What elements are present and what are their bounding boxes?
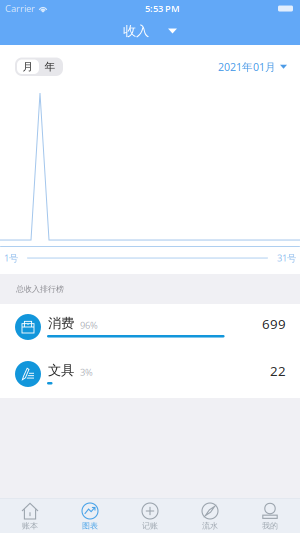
staticText: 记账: [142, 521, 158, 531]
button[interactable]: 我的: [240, 498, 300, 533]
staticText: 总收入排行榜: [16, 284, 64, 294]
staticText: 月: [22, 60, 33, 73]
button[interactable]: 流水: [180, 498, 240, 533]
staticText: 流水: [202, 521, 218, 531]
staticText: 年: [44, 60, 55, 73]
button[interactable]: 年: [39, 59, 61, 74]
staticText: 5:53 PM: [145, 2, 180, 15]
staticText: Carrier: [5, 2, 35, 15]
button[interactable]: 2021年01月: [218, 60, 287, 74]
button[interactable]: 记账: [120, 498, 180, 533]
staticText: 账本: [22, 521, 38, 531]
button[interactable]: 图表: [60, 498, 120, 533]
button[interactable]: 收入: [0, 17, 300, 45]
staticText: 1号: [4, 252, 18, 264]
staticText: 图表: [82, 521, 98, 531]
staticText: 3%: [80, 366, 93, 378]
staticText: 699: [262, 315, 286, 333]
button[interactable]: 文具: [0, 351, 300, 398]
staticText: 消费: [48, 315, 74, 331]
staticText: 文具: [48, 362, 74, 378]
staticText: 22: [270, 362, 286, 380]
button[interactable]: 月: [17, 59, 39, 74]
staticText: 31号: [277, 252, 296, 264]
staticText: 我的: [262, 521, 278, 531]
staticText: 2021年01月: [218, 60, 276, 74]
staticText: 96%: [80, 319, 98, 331]
button[interactable]: 账本: [0, 498, 60, 533]
staticText: 收入: [123, 23, 149, 39]
button[interactable]: 消费: [0, 304, 300, 351]
